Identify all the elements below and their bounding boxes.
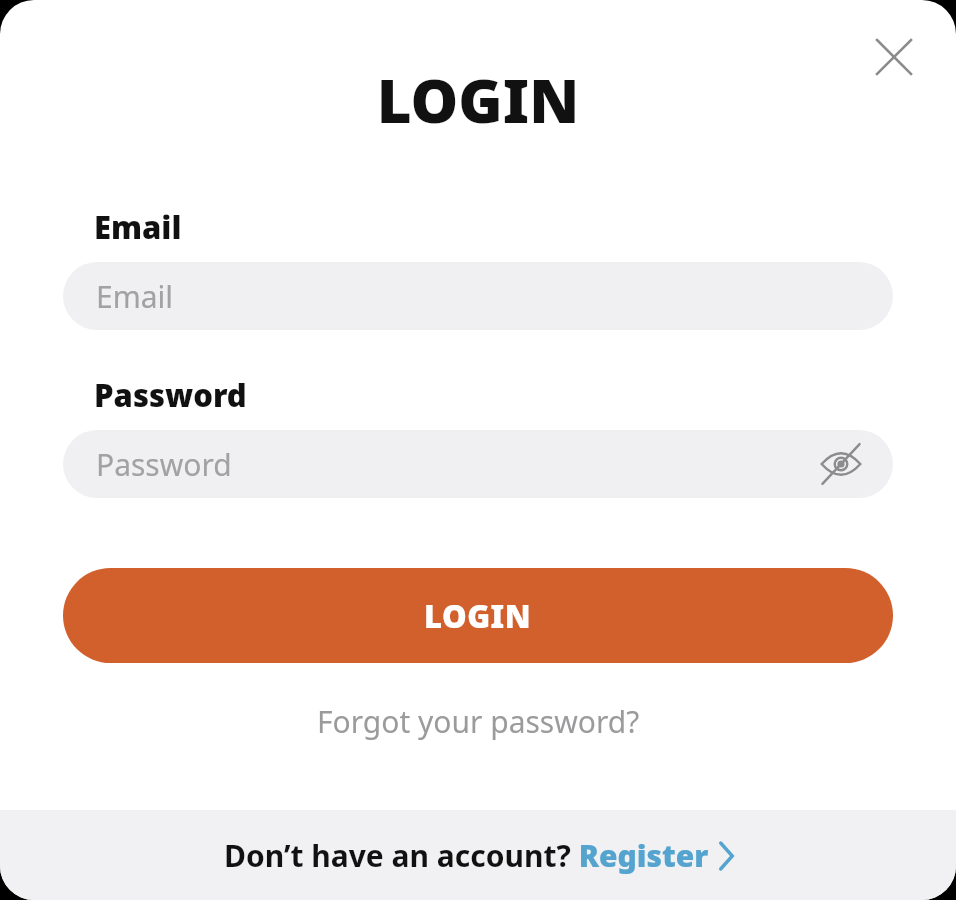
button[interactable]: Close <box>862 25 926 89</box>
staticText: LOGIN <box>0 59 956 141</box>
staticText: Password <box>94 374 247 416</box>
button[interactable]: Password <box>63 430 893 498</box>
button[interactable]: LOGIN <box>63 568 893 663</box>
staticText: Forgot your password? <box>317 701 640 742</box>
button[interactable]: Don’t have an account? Register <box>0 810 956 900</box>
button[interactable]: Email <box>63 262 893 330</box>
button[interactable]: Forgot your password? <box>0 692 956 750</box>
staticText: Email <box>94 206 182 248</box>
staticText: Email <box>96 276 174 317</box>
staticText: Don’t have an account? Register <box>224 835 709 876</box>
button[interactable]: Show password <box>813 436 869 492</box>
staticText: LOGIN <box>424 595 532 637</box>
staticText: Password <box>96 444 232 485</box>
